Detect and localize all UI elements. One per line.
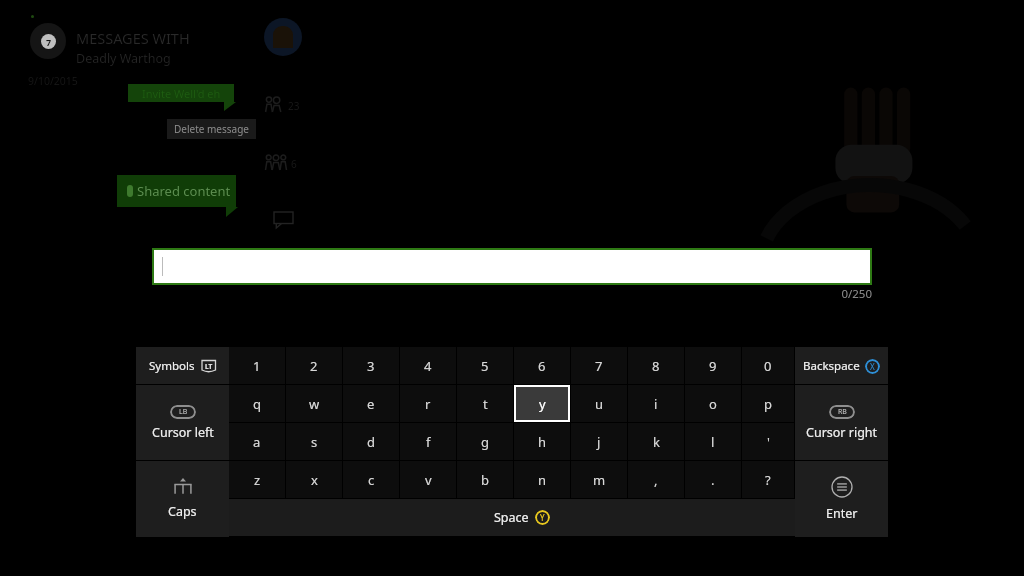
button[interactable]: h [514, 423, 570, 460]
button[interactable]: Caps [136, 461, 229, 537]
staticText: Cursor left [152, 424, 214, 441]
staticText: , [654, 471, 658, 489]
button[interactable]: 9 [685, 347, 741, 384]
button[interactable]: Space [229, 499, 795, 536]
staticText: x [311, 471, 318, 489]
staticText: d [367, 433, 375, 451]
button[interactable]: l [685, 423, 741, 460]
button[interactable]: Symbols [136, 347, 229, 384]
staticText: Caps [168, 503, 197, 520]
staticText: Shared content [137, 182, 231, 200]
button[interactable]: u [571, 385, 627, 422]
staticText: 5 [481, 357, 489, 375]
staticText: l [711, 433, 715, 451]
button[interactable]: 1 [229, 347, 285, 384]
button[interactable]: v [400, 461, 456, 498]
staticText: o [709, 395, 717, 413]
button[interactable]: i [628, 385, 684, 422]
staticText: m [593, 471, 606, 489]
button[interactable]: 3 [343, 347, 399, 384]
staticText: 6 [538, 357, 546, 375]
button[interactable]: r [400, 385, 456, 422]
button[interactable]: 6 [514, 347, 570, 384]
other: RB [829, 405, 855, 419]
staticText: Y [540, 512, 545, 523]
staticText: 9/10/2015 [28, 74, 78, 88]
button[interactable]: a [229, 423, 285, 460]
staticText: 9 [709, 357, 717, 375]
other: LT [200, 359, 217, 374]
staticText: g [481, 433, 489, 451]
staticText: 1 [253, 357, 261, 375]
staticText: 3 [367, 357, 375, 375]
button[interactable]: m [571, 461, 627, 498]
staticText: c [368, 471, 375, 489]
button[interactable]: 4 [400, 347, 456, 384]
button[interactable]: t [457, 385, 513, 422]
button[interactable]: x [286, 461, 342, 498]
button[interactable]: c [343, 461, 399, 498]
staticText: f [426, 433, 431, 451]
button[interactable]: g [457, 423, 513, 460]
button[interactable]: k [628, 423, 684, 460]
staticText: b [481, 471, 489, 489]
button[interactable]: LB [136, 385, 229, 460]
staticText: Space [494, 509, 529, 526]
button[interactable]: s [286, 423, 342, 460]
button[interactable]: z [229, 461, 285, 498]
button[interactable]: d [343, 423, 399, 460]
button[interactable]: n [514, 461, 570, 498]
staticText: . [711, 471, 715, 489]
staticText: 0 [764, 357, 772, 375]
staticText: Delete message [174, 122, 249, 136]
staticText: s [311, 433, 318, 451]
staticText: w [309, 395, 320, 413]
button[interactable]: ' [742, 423, 794, 460]
button[interactable]: 8 [628, 347, 684, 384]
button[interactable]: 2 [286, 347, 342, 384]
other: LB [170, 405, 196, 419]
staticText: 0/250 [820, 286, 872, 302]
button[interactable]: q [229, 385, 285, 422]
button[interactable]: Delete message [174, 122, 249, 136]
button[interactable]: 5 [457, 347, 513, 384]
staticText: Backspace [803, 358, 860, 374]
button[interactable]: 7 [571, 347, 627, 384]
staticText: k [653, 433, 660, 451]
button[interactable]: . [685, 461, 741, 498]
staticText: X [870, 361, 875, 372]
staticText: RB [838, 407, 847, 417]
staticText: 2 [310, 357, 318, 375]
staticText: t [483, 395, 488, 413]
staticText: z [254, 471, 261, 489]
button[interactable]: Backspace [795, 347, 888, 384]
button[interactable]: w [286, 385, 342, 422]
other: Caps [171, 478, 195, 496]
staticText: Deadly Warthog [76, 50, 171, 67]
staticText: v [425, 471, 432, 489]
staticText: u [595, 395, 604, 413]
staticText: ' [767, 433, 770, 451]
button[interactable]: j [571, 423, 627, 460]
button[interactable]: f [400, 423, 456, 460]
button[interactable]: Menu button [795, 461, 888, 537]
button[interactable]: ? [742, 461, 794, 498]
staticText: 6 [291, 157, 297, 171]
button[interactable]: o [685, 385, 741, 422]
button[interactable]: b [457, 461, 513, 498]
button[interactable]: y [516, 387, 568, 420]
button[interactable]: e [343, 385, 399, 422]
staticText: ? [765, 471, 771, 489]
button[interactable]: 0 [742, 347, 794, 384]
button[interactable]: RB [795, 385, 888, 460]
button[interactable]: p [742, 385, 794, 422]
button[interactable]: , [628, 461, 684, 498]
staticText: 8 [652, 357, 660, 375]
staticText: j [597, 433, 601, 451]
staticText: h [538, 433, 547, 451]
staticText: LB [179, 407, 188, 417]
staticText: a [253, 433, 261, 451]
button[interactable]: Shared content [117, 175, 236, 207]
staticText: e [367, 395, 375, 413]
